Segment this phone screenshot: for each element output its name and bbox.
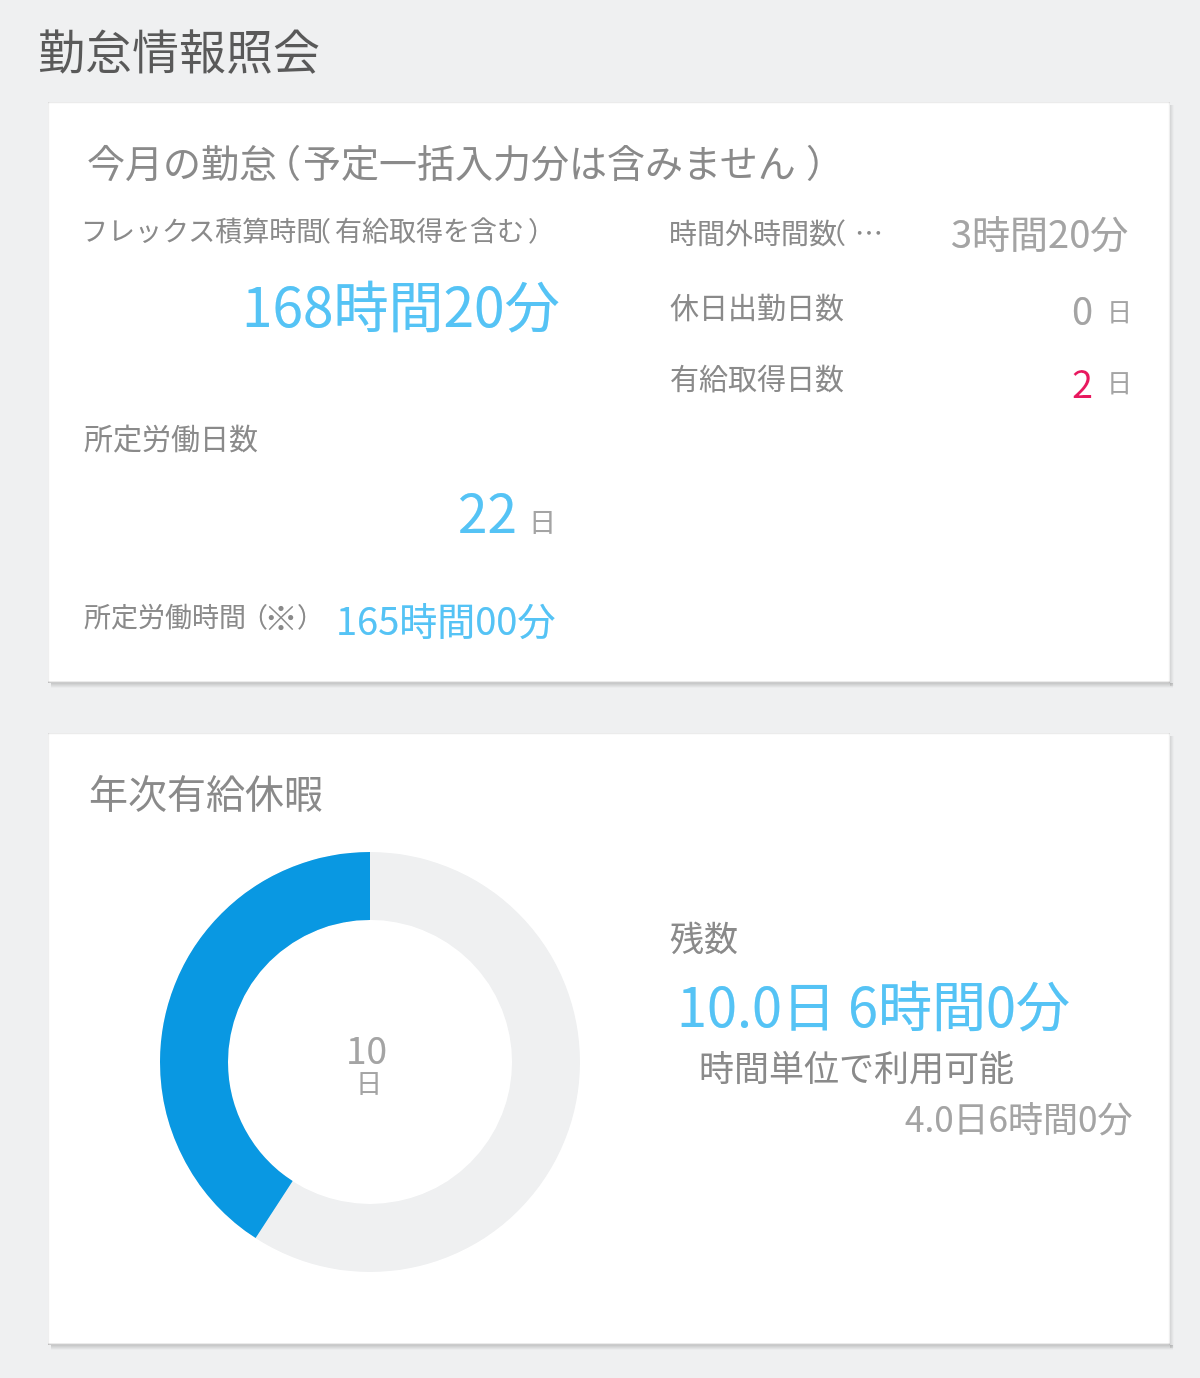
staticText: （ xyxy=(263,133,302,188)
staticText: 時間外時間数 xyxy=(669,212,838,253)
other: 年次有給休暇の残数 10日 xyxy=(160,852,580,1272)
staticText: 年次有給休暇 xyxy=(89,763,324,819)
staticText: （ xyxy=(818,212,847,253)
staticText: 0 xyxy=(1072,281,1094,336)
staticText: … xyxy=(855,212,884,253)
button[interactable]: 今月の勤怠 xyxy=(48,102,1170,683)
staticText: ） xyxy=(528,210,555,249)
staticText: 所定労働日数 xyxy=(84,416,259,458)
staticText: （ xyxy=(241,596,268,635)
staticText: （ xyxy=(304,210,331,249)
button[interactable]: 年次有給休暇 xyxy=(48,733,1170,1345)
staticText: 残数 xyxy=(670,912,738,961)
staticText: 勤怠情報照会 xyxy=(38,14,320,82)
staticText: 10 xyxy=(346,1021,388,1075)
staticText: 有給取得を含む xyxy=(335,210,524,249)
staticText: ※ xyxy=(264,592,298,641)
staticText: 165時間00分 xyxy=(336,591,556,646)
staticText: 休日出勤日数 xyxy=(670,285,845,327)
staticText: ） xyxy=(806,133,845,188)
staticText: 22 xyxy=(458,472,517,549)
staticText: 4.0日6時間0分 xyxy=(905,1091,1133,1142)
staticText: 予定一括入力分は含みません xyxy=(303,133,796,188)
staticText: 10.0日 6時間0分 xyxy=(677,964,1070,1042)
staticText: 168時間20分 xyxy=(242,263,560,343)
staticText: ） xyxy=(297,596,324,635)
staticText: 時間単位で利用可能 xyxy=(699,1040,1015,1091)
staticText: 日 xyxy=(1107,363,1133,399)
staticText: 日 xyxy=(356,1063,383,1101)
staticText: 日 xyxy=(529,501,556,540)
staticText: 有給取得日数 xyxy=(670,356,845,398)
staticText: 今月の勤怠 xyxy=(87,133,278,188)
staticText: 2 xyxy=(1072,354,1094,409)
staticText: 日 xyxy=(1107,292,1133,328)
staticText: 所定労働時間 xyxy=(84,596,246,635)
staticText: フレックス積算時間 xyxy=(81,210,324,249)
staticText: 3時間20分 xyxy=(951,204,1129,259)
